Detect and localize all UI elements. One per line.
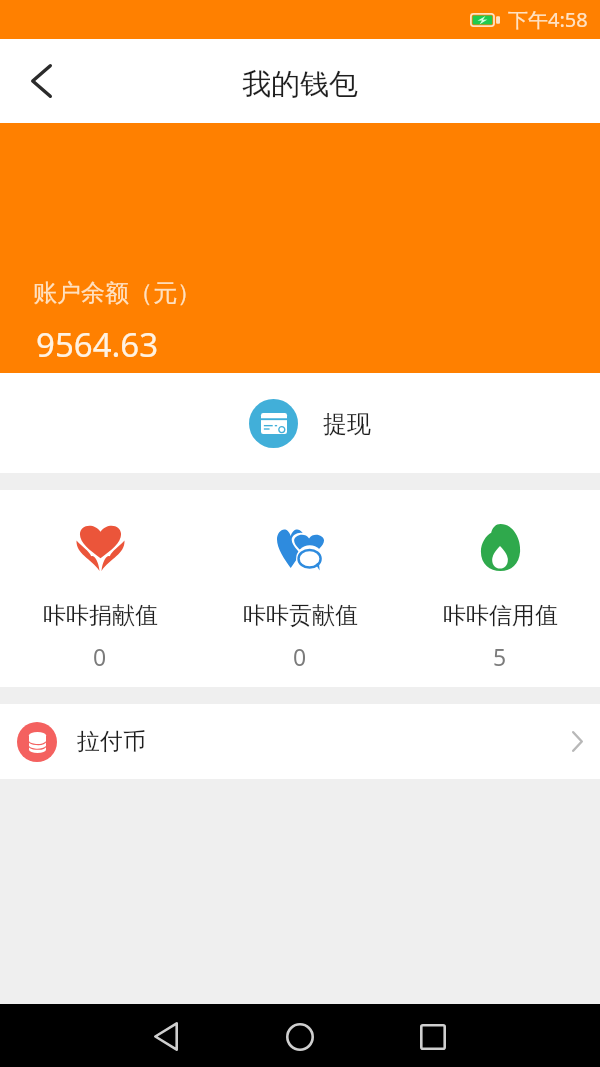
- button[interactable]: 拉付币: [0, 704, 600, 779]
- staticText: 9564.63: [36, 322, 159, 367]
- staticText: 0: [93, 641, 107, 672]
- staticText: 咔咔捐献值: [43, 601, 158, 630]
- button[interactable]: Back: [136, 1004, 196, 1067]
- button[interactable]: Recents: [403, 1004, 463, 1067]
- staticText: 拉付币: [77, 727, 146, 756]
- staticText: 提现: [323, 409, 371, 439]
- button[interactable]: Home: [270, 1004, 330, 1067]
- button[interactable]: 咔咔信用值: [400, 490, 600, 687]
- staticText: 咔咔贡献值: [243, 601, 358, 630]
- staticText: 下午4:58: [508, 6, 588, 33]
- button[interactable]: 咔咔捐献值: [0, 490, 200, 687]
- button[interactable]: 提现: [249, 383, 371, 464]
- staticText: 账户余额（元）: [33, 278, 201, 308]
- staticText: 咔咔信用值: [443, 601, 558, 630]
- button[interactable]: Back: [0, 39, 82, 123]
- staticText: 0: [293, 641, 307, 672]
- button[interactable]: 咔咔贡献值: [200, 490, 400, 687]
- staticText: 我的钱包: [242, 66, 358, 103]
- staticText: 5: [493, 641, 507, 672]
